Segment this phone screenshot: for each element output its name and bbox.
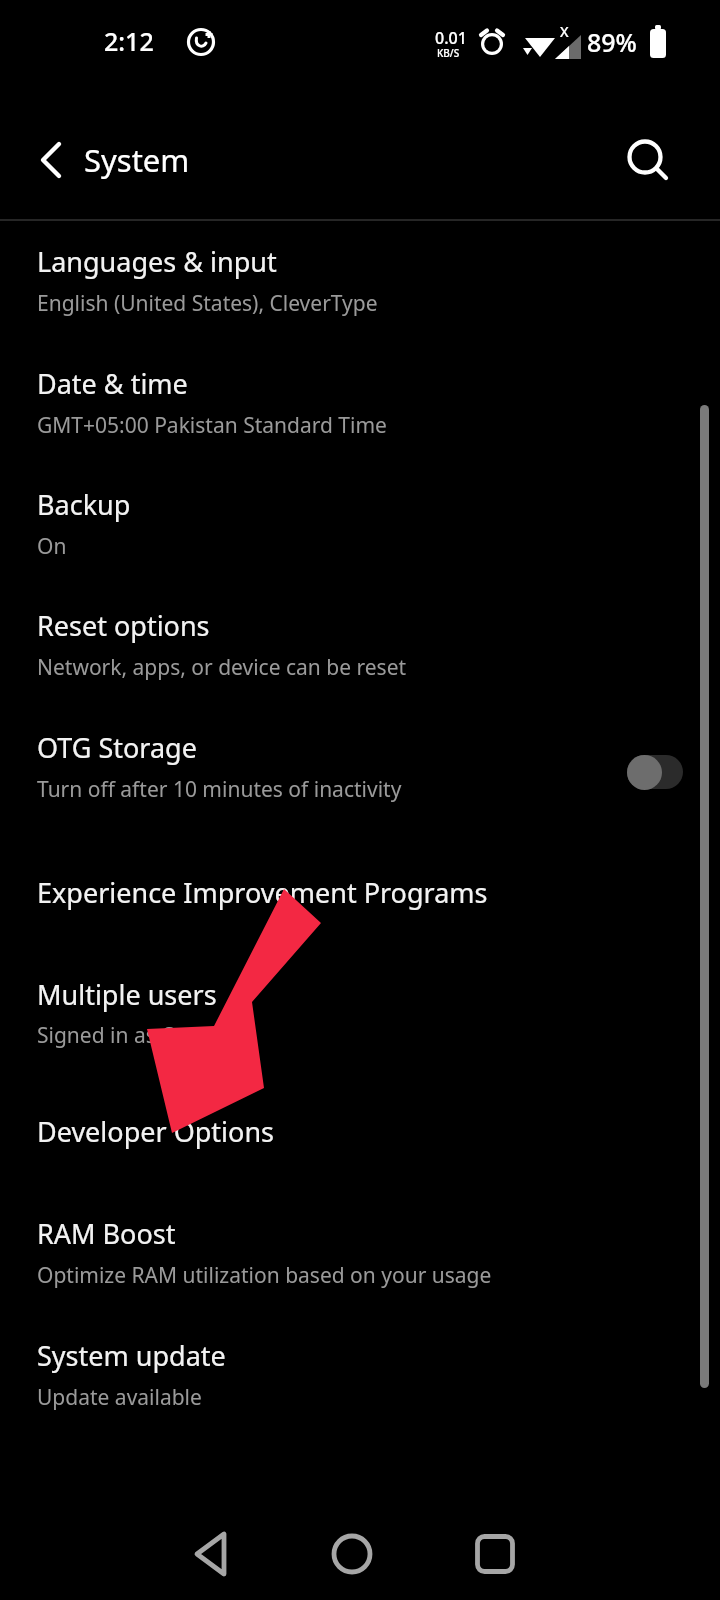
button[interactable]: Recent apps — [455, 1514, 535, 1594]
staticText: Optimize RAM utilization based on your u… — [37, 1261, 492, 1290]
button[interactable]: Search settings — [611, 125, 681, 195]
staticText: 89% — [587, 25, 637, 59]
staticText: Reset options — [37, 607, 210, 644]
staticText: OTG Storage — [37, 729, 197, 766]
staticText: Turn off after 10 minutes of inactivity — [37, 775, 402, 804]
button[interactable]: System — [84, 125, 504, 195]
staticText: Developer Options — [37, 1113, 275, 1150]
staticText: Multiple users — [37, 976, 217, 1013]
staticText: Network, apps, or device can be reset — [37, 653, 407, 682]
staticText: Signed in as Owner — [37, 1021, 228, 1050]
button[interactable] — [0, 956, 720, 1068]
button[interactable] — [0, 1093, 720, 1171]
button[interactable]: OTG Storage switch, off — [614, 743, 696, 801]
staticText: English (United States), CleverType — [37, 289, 378, 318]
staticText: System update — [37, 1337, 226, 1374]
staticText: 2:12 — [104, 24, 154, 58]
staticText: Date & time — [37, 365, 188, 402]
staticText: System — [84, 139, 190, 181]
button[interactable] — [0, 473, 720, 585]
staticText: Update available — [37, 1383, 202, 1412]
button[interactable] — [0, 352, 720, 464]
staticText: Backup — [37, 486, 131, 523]
button[interactable]: Home — [312, 1514, 392, 1594]
button[interactable]: Back — [172, 1514, 252, 1594]
button[interactable]: Navigate up — [14, 125, 84, 195]
staticText: X — [560, 22, 569, 41]
button[interactable] — [0, 594, 720, 706]
button[interactable] — [0, 230, 720, 342]
staticText: 0.01 — [435, 27, 467, 49]
staticText: RAM Boost — [37, 1215, 176, 1252]
staticText: On — [37, 532, 67, 561]
staticText: KB/S — [437, 46, 460, 60]
staticText: Experience Improvement Programs — [37, 874, 488, 911]
staticText: GMT+05:00 Pakistan Standard Time — [37, 411, 387, 440]
button[interactable] — [0, 716, 720, 828]
button[interactable] — [0, 1195, 720, 1307]
button[interactable] — [0, 854, 720, 932]
button[interactable] — [0, 1317, 720, 1429]
staticText: Languages & input — [37, 243, 277, 280]
